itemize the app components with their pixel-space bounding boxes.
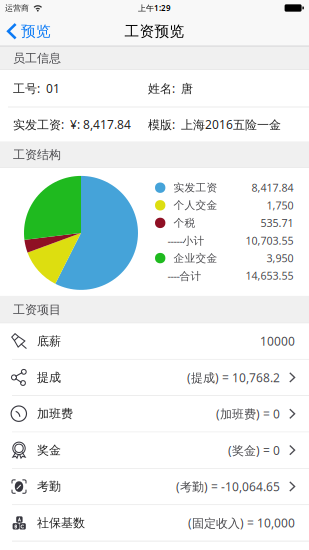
staticText: 535.71 — [260, 216, 293, 230]
button[interactable]: 预览 — [0, 22, 51, 40]
button[interactable]: 提成 — [0, 360, 309, 396]
button[interactable]: 考勤 — [0, 469, 309, 505]
button[interactable]: 社保基数 — [0, 505, 309, 542]
staticText: 员工信息 — [13, 51, 61, 66]
staticText: (提成) = 10,768.2 — [187, 370, 280, 385]
staticText: 姓名: 唐 — [148, 80, 193, 96]
staticText: 工资预览 — [124, 22, 184, 40]
staticText: 实发工资: ¥: 8,417.84 — [13, 116, 131, 132]
staticText: (固定收入) = 10,000 — [188, 515, 295, 531]
staticText: 工资结构 — [13, 147, 61, 162]
staticText: 加班费 — [37, 406, 73, 421]
staticText: 10000 — [260, 333, 295, 349]
staticText: 社保基数 — [37, 516, 85, 530]
staticText: 1,750 — [266, 198, 293, 212]
staticText: (加班费) = 0 — [216, 406, 280, 422]
staticText: (考勤) = -10,064.65 — [176, 479, 280, 494]
staticText: 工号: 01 — [13, 80, 60, 96]
staticText: 预览 — [21, 22, 51, 40]
staticText: 企业交金 — [174, 251, 218, 265]
button[interactable]: 底薪 — [0, 323, 309, 360]
button[interactable]: 奖金 — [0, 432, 309, 469]
staticText: 10,703.55 — [245, 233, 293, 248]
button[interactable]: 加班费 — [0, 396, 309, 432]
staticText: 个税 — [174, 216, 196, 229]
staticText: 运营商 — [5, 3, 29, 13]
staticText: 奖金 — [37, 443, 61, 458]
staticText: 8,417.84 — [251, 181, 293, 195]
staticText: ----合计 — [168, 269, 202, 283]
staticText: 考勤 — [37, 479, 61, 494]
staticText: 个人交金 — [174, 199, 218, 212]
staticText: 实发工资 — [174, 181, 218, 194]
staticText: 模版: 上海2016五险一金 — [148, 116, 281, 132]
staticText: 底薪 — [37, 334, 61, 348]
staticText: 提成 — [37, 370, 61, 385]
staticText: 14,653.55 — [245, 269, 293, 283]
staticText: -----小计 — [168, 233, 205, 248]
staticText: 工资项目 — [13, 302, 61, 317]
staticText: 3,950 — [266, 251, 293, 265]
staticText: (奖金) = 0 — [228, 442, 280, 458]
staticText: 上午1:29 — [138, 3, 171, 13]
